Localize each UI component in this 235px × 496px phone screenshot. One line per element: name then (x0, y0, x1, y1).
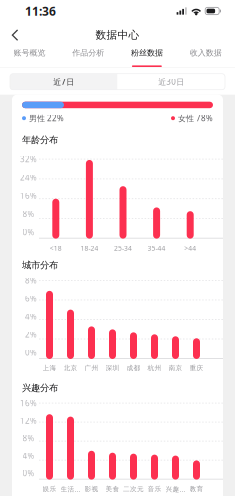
button[interactable]: Back (4, 22, 26, 47)
button[interactable]: 粉丝数据 (117, 48, 176, 67)
staticText: 南京 (168, 364, 182, 372)
staticText: 近7日 (53, 76, 74, 87)
staticText: 粉丝数据 (131, 48, 163, 58)
staticText: 8% (25, 275, 37, 286)
button[interactable]: 近7日 (10, 74, 117, 90)
staticText: 8% (22, 433, 34, 443)
staticText: 美食 (105, 485, 119, 493)
button[interactable]: 账号概览 (0, 48, 59, 67)
staticText: 广州 (84, 364, 98, 372)
staticText: 上海 (42, 364, 56, 372)
staticText: 6% (25, 293, 37, 304)
button[interactable]: 作品分析 (59, 48, 118, 67)
staticText: 8% (22, 209, 34, 219)
staticText: 女性 78% (178, 113, 213, 123)
staticText: 娱乐 (42, 485, 56, 493)
staticText: 城市分布 (22, 259, 58, 271)
staticText: 35-44 (148, 244, 166, 253)
staticText: 作品分析 (72, 48, 104, 58)
staticText: 成都 (126, 364, 140, 372)
staticText: 25-34 (114, 244, 132, 253)
staticText: 二次元 (123, 485, 144, 493)
staticText: 数据中心 (95, 28, 139, 41)
staticText: 11:36 (25, 3, 56, 19)
staticText: 24% (20, 172, 37, 183)
staticText: 北京 (63, 364, 77, 372)
staticText: 年龄分布 (22, 134, 58, 146)
staticText: >44 (184, 244, 196, 253)
button[interactable]: 收入数据 (176, 48, 235, 67)
staticText: 16% (20, 190, 37, 201)
staticText: 兴趣分布 (22, 382, 58, 394)
staticText: 18-24 (80, 244, 98, 253)
staticText: 12% (20, 415, 37, 426)
staticText: 账号概览 (13, 48, 45, 58)
staticText: 2% (25, 329, 37, 340)
staticText: 4% (22, 450, 34, 461)
staticText: 生活... (60, 485, 80, 493)
staticText: <18 (50, 244, 62, 253)
staticText: 32% (20, 154, 37, 164)
staticText: 4% (25, 311, 37, 322)
staticText: 教育 (189, 485, 203, 493)
staticText: 重庆 (189, 364, 203, 372)
staticText: 收入数据 (190, 48, 222, 58)
staticText: 深圳 (105, 364, 119, 372)
staticText: 音乐 (147, 485, 161, 493)
staticText: 0% (22, 468, 34, 478)
staticText: 16% (20, 398, 37, 408)
staticText: 男性 22% (29, 113, 64, 123)
staticText: 0% (22, 227, 34, 237)
staticText: 0% (25, 347, 37, 358)
staticText: 近30日 (158, 76, 184, 87)
staticText: 影视 (84, 485, 98, 493)
staticText: 兴趣... (165, 485, 185, 493)
button[interactable]: 近30日 (117, 74, 225, 90)
staticText: 杭州 (147, 364, 161, 372)
